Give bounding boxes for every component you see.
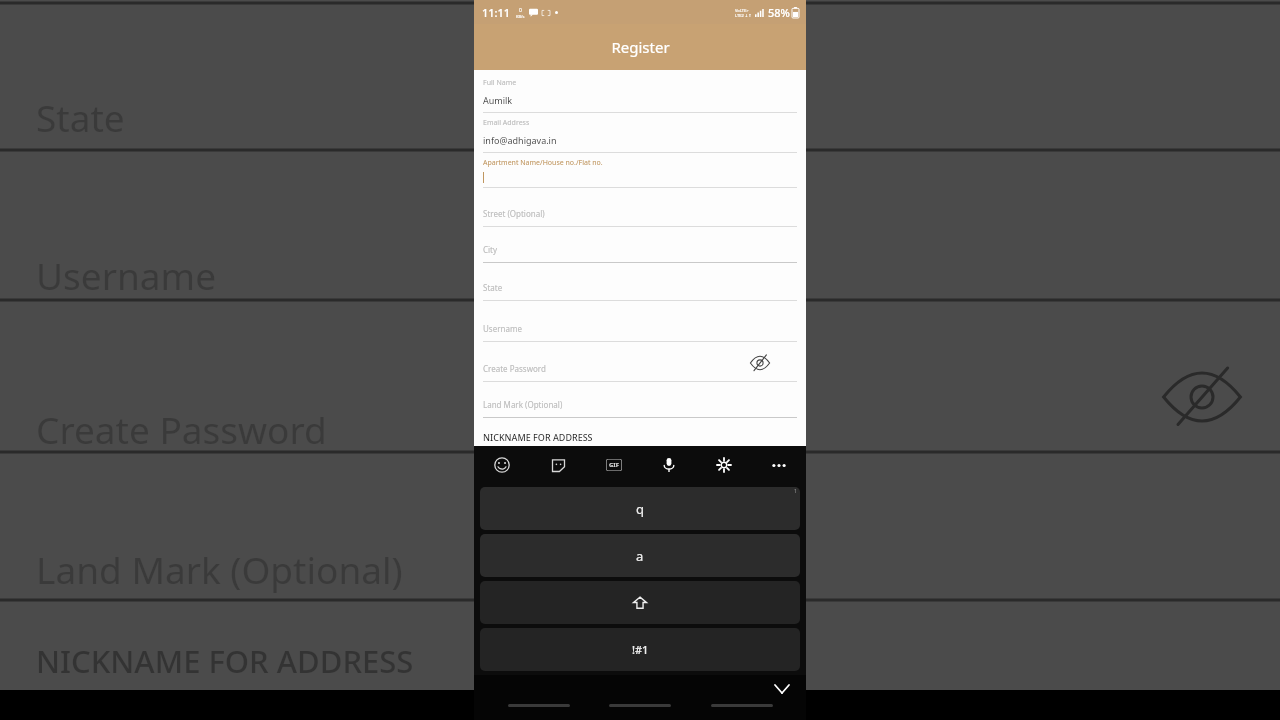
button[interactable]: Hide keyboard — [770, 677, 794, 701]
button[interactable]: a — [480, 534, 800, 577]
staticText: q — [636, 500, 644, 518]
button[interactable]: !#1 — [480, 628, 800, 671]
staticText: LTE2 ↓↑ — [735, 13, 752, 18]
button[interactable]: Shift — [480, 581, 800, 624]
staticText: info@adhigava.in — [483, 134, 557, 146]
staticText: 58% — [768, 5, 790, 20]
button[interactable]: Email Address — [474, 118, 806, 153]
staticText: Register — [611, 37, 670, 57]
button[interactable]: Keyboard settings — [696, 446, 751, 484]
staticText: Land Mark (Optional) — [36, 544, 403, 594]
button[interactable]: Voice input — [641, 446, 696, 484]
staticText: Full Name — [483, 78, 517, 88]
staticText: Create Password — [483, 363, 546, 374]
staticText: 11:11 — [482, 5, 511, 20]
staticText: 1 — [794, 488, 797, 495]
button[interactable]: Apartment Name/House no./Flat no. — [474, 158, 806, 188]
staticText: GIF — [609, 461, 619, 469]
staticText: Create Password — [36, 404, 327, 454]
button[interactable]: Username — [474, 323, 806, 342]
button[interactable]: State — [474, 282, 806, 301]
staticText: Username — [483, 323, 522, 334]
staticText: Email Address — [483, 118, 530, 128]
button[interactable]: Land Mark (Optional) — [474, 399, 806, 418]
staticText: VoLTE> — [735, 8, 749, 13]
button[interactable]: Stickers — [530, 446, 586, 484]
staticText: State — [36, 92, 125, 142]
button[interactable]: Full Name — [474, 78, 806, 113]
button[interactable]: City — [474, 244, 806, 263]
button[interactable]: Emoji — [474, 446, 530, 484]
staticText: Aumilk — [483, 94, 513, 106]
button[interactable]: Home — [603, 698, 677, 712]
staticText: City — [483, 244, 498, 255]
button[interactable]: Street (Optional) — [474, 208, 806, 227]
staticText: State — [483, 282, 503, 293]
staticText: Apartment Name/House no./Flat no. — [483, 158, 603, 168]
button[interactable]: Create Password — [474, 363, 806, 382]
staticText: a — [636, 547, 644, 565]
staticText: Land Mark (Optional) — [483, 399, 563, 410]
staticText: Street (Optional) — [483, 208, 545, 219]
staticText: 0 — [519, 7, 522, 14]
staticText: KB/s — [516, 14, 525, 19]
button[interactable]: q — [480, 487, 800, 530]
staticText: Username — [36, 250, 217, 300]
staticText: NICKNAME FOR ADDRESS — [36, 640, 414, 682]
button[interactable]: Toggle password visibility — [746, 352, 774, 374]
staticText: NICKNAME FOR ADDRESS — [483, 431, 593, 443]
button[interactable]: Recents — [502, 698, 576, 712]
button[interactable]: GIF — [586, 446, 641, 484]
button[interactable]: More options — [751, 446, 806, 484]
staticText: !#1 — [632, 642, 649, 657]
button[interactable]: Back — [705, 698, 779, 712]
